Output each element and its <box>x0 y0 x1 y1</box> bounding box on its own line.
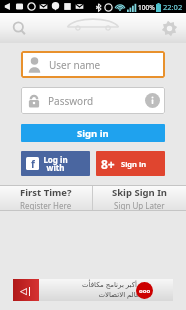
staticText: 22:02 <box>163 2 183 12</box>
button[interactable]: Skip Sign In <box>93 185 186 211</box>
staticText: ooo <box>139 287 151 295</box>
staticText: Sign in <box>77 127 109 140</box>
button[interactable]: First Time? <box>0 185 92 211</box>
staticText: f <box>31 157 35 170</box>
staticText: First Time? <box>20 186 72 199</box>
staticText: Register Here <box>20 200 72 211</box>
button[interactable]: Settings <box>152 13 186 43</box>
button[interactable]: f <box>21 151 90 176</box>
staticText: ◁| <box>20 284 32 296</box>
staticText: 8+ <box>101 156 115 172</box>
staticText: Log in with <box>43 154 68 173</box>
button[interactable]: Password <box>21 87 165 114</box>
button[interactable]: Sign in <box>21 124 165 142</box>
staticText: في عالم الاتصالات <box>98 290 151 300</box>
button[interactable]: Search <box>0 13 38 43</box>
button[interactable]: 8+ <box>96 151 165 176</box>
staticText: Sign Up Later <box>114 200 165 211</box>
staticText: User name <box>49 58 101 72</box>
button[interactable]: User name <box>21 51 165 78</box>
button[interactable]: Password info <box>145 93 160 108</box>
staticText: 100% <box>138 3 155 12</box>
staticText: Password <box>48 94 94 108</box>
staticText: جوم أكبر برنامج مكافأت <box>82 280 151 290</box>
staticText: Skip Sign In <box>112 186 168 199</box>
staticText: Sign in <box>121 159 147 169</box>
button[interactable]: Advertisement <box>13 279 173 301</box>
